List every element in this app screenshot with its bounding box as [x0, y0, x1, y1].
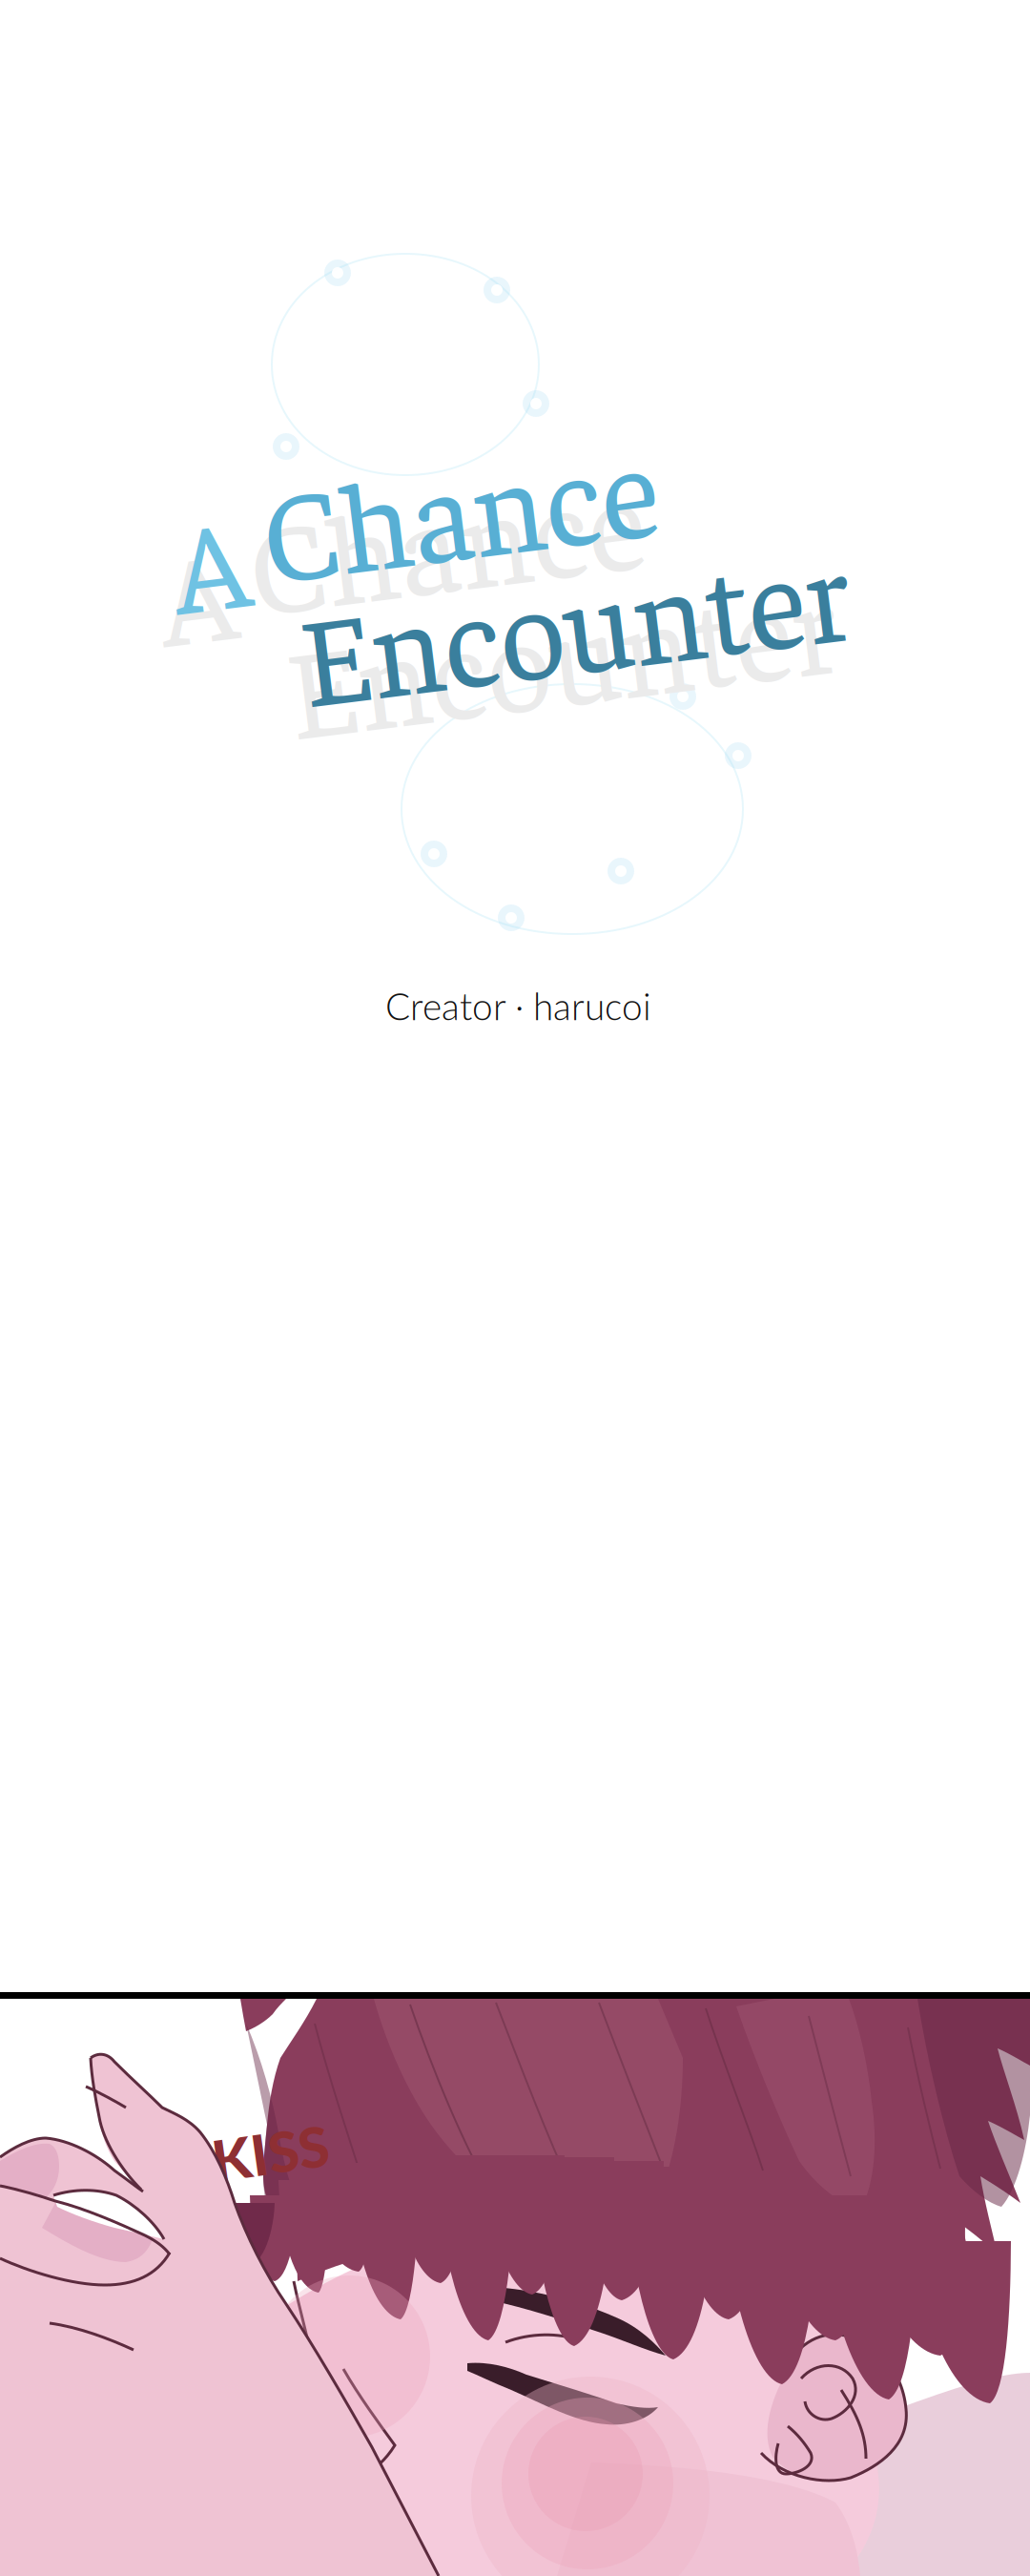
- staticText: Encounter: [289, 576, 843, 737]
- staticText: Chance: [238, 485, 637, 645]
- staticText: Creator · harucoi: [385, 984, 651, 1028]
- staticText: KISS: [212, 2119, 329, 2186]
- staticText: A: [162, 485, 238, 643]
- staticText: Encounter: [276, 609, 830, 769]
- staticText: A: [149, 517, 225, 676]
- staticText: Chance: [252, 452, 650, 613]
